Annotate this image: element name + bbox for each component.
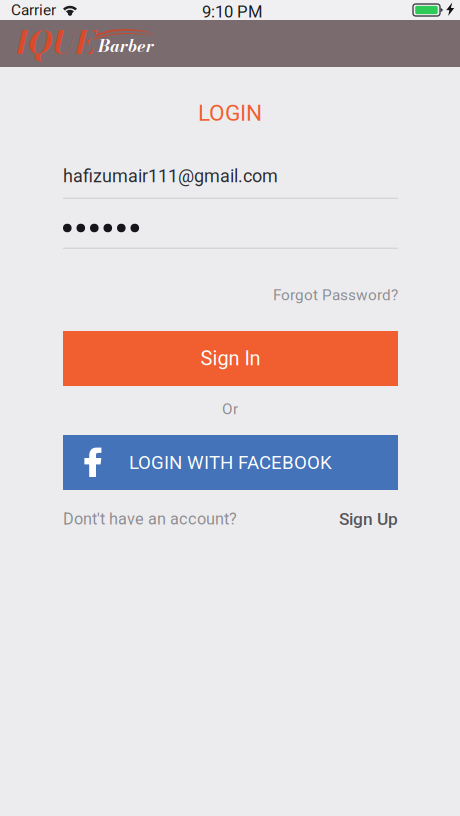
- button[interactable]: Forgot Password?: [63, 286, 398, 304]
- staticText: Sign In: [200, 347, 260, 370]
- staticText: LOGIN: [198, 100, 262, 126]
- staticText: Or: [222, 400, 238, 418]
- staticText: Forgot Password?: [273, 286, 398, 304]
- staticText: LOGIN WITH FACEBOOK: [129, 452, 332, 473]
- staticText: Carrier: [11, 1, 56, 19]
- button[interactable]: Dont't have an account?: [63, 509, 237, 529]
- button[interactable]: Sign Up: [339, 509, 398, 529]
- staticText: hafizumair111@gmail.com: [63, 165, 278, 187]
- staticText: IQUE: [15, 18, 95, 67]
- button[interactable]: LOGIN: [0, 102, 460, 124]
- button[interactable]: LOGIN WITH FACEBOOK: [63, 435, 398, 490]
- staticText: 9:10 PM: [202, 2, 263, 21]
- button[interactable]: Sign In: [63, 331, 398, 386]
- staticText: Dont't have an account?: [63, 509, 237, 529]
- staticText: Sign Up: [339, 509, 398, 529]
- staticText: Barber: [98, 32, 154, 59]
